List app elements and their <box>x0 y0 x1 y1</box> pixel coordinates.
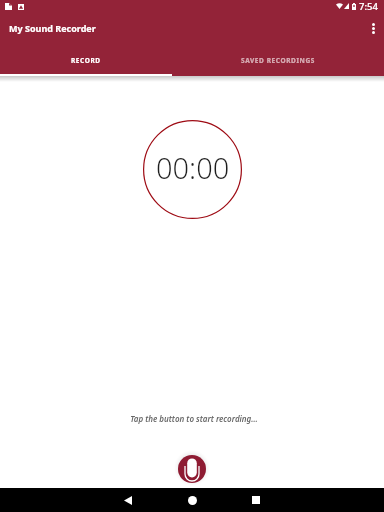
staticText: My Sound Recorder <box>9 22 96 34</box>
button[interactable]: Back <box>96 488 160 512</box>
button[interactable]: Start recording <box>178 455 206 483</box>
button[interactable]: Recents <box>224 488 288 512</box>
staticText: 7:54 <box>359 0 378 12</box>
staticText: Tap the button to start recording… <box>130 413 258 424</box>
button[interactable]: More options <box>362 17 384 39</box>
staticText: SAVED RECORDINGS <box>241 56 315 65</box>
button[interactable]: Home <box>160 488 224 512</box>
staticText: 00:00 <box>156 148 230 187</box>
staticText: RECORD <box>71 56 101 65</box>
button[interactable]: SAVED RECORDINGS <box>172 44 384 76</box>
button[interactable]: RECORD <box>0 44 172 76</box>
